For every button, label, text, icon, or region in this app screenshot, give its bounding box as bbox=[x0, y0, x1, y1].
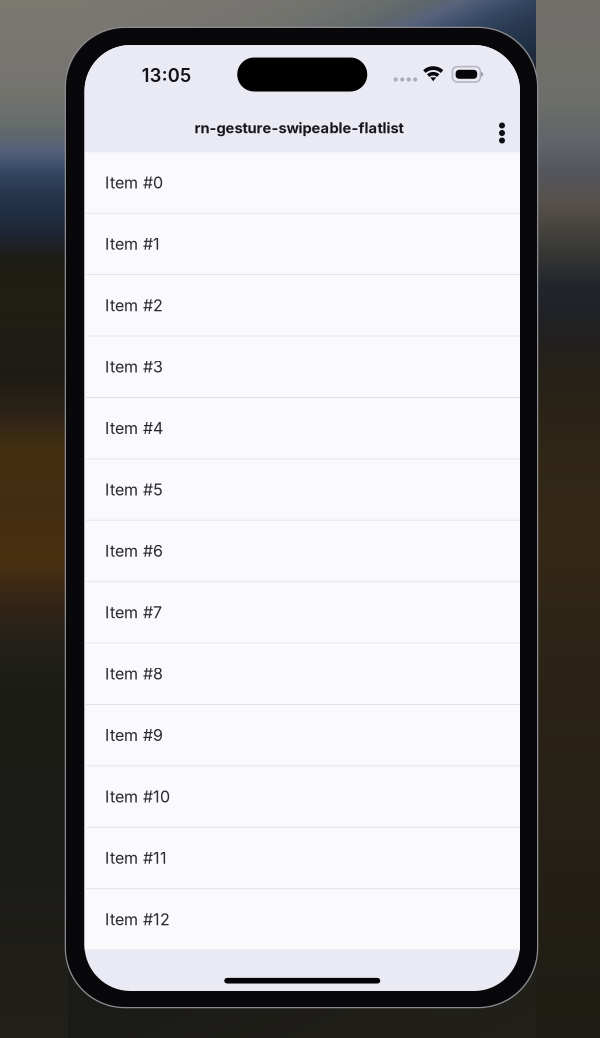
button[interactable]: Item #0 bbox=[84, 152, 520, 214]
button[interactable]: Item #4 bbox=[84, 398, 520, 459]
staticText: Item #0 bbox=[105, 173, 163, 192]
staticText: Item #3 bbox=[105, 357, 163, 376]
button[interactable]: Item #8 bbox=[84, 644, 520, 705]
button[interactable]: Item #9 bbox=[84, 705, 520, 766]
staticText: Item #12 bbox=[105, 910, 170, 929]
button[interactable]: Item #12 bbox=[84, 889, 520, 951]
staticText: Item #8 bbox=[105, 664, 163, 683]
button[interactable]: Item #2 bbox=[84, 275, 520, 337]
staticText: Item #6 bbox=[105, 541, 163, 561]
button[interactable]: Item #11 bbox=[84, 828, 520, 889]
button[interactable]: Item #3 bbox=[84, 337, 520, 398]
button[interactable]: Item #5 bbox=[84, 459, 520, 521]
button[interactable]: Item #1 bbox=[84, 214, 520, 275]
button[interactable]: Item #6 bbox=[84, 521, 520, 582]
button[interactable]: Item #10 bbox=[84, 766, 520, 828]
staticText: 13:05 bbox=[142, 64, 191, 86]
button[interactable]: Item #7 bbox=[84, 582, 520, 644]
staticText: Item #5 bbox=[105, 480, 163, 499]
staticText: Item #9 bbox=[105, 725, 163, 745]
staticText: Item #2 bbox=[105, 296, 163, 315]
staticText: Item #10 bbox=[105, 787, 170, 806]
staticText: Item #11 bbox=[105, 848, 167, 868]
staticText: Item #1 bbox=[105, 234, 160, 254]
staticText: Item #7 bbox=[105, 603, 162, 622]
staticText: Item #4 bbox=[105, 418, 163, 438]
staticText: rn-gesture-swipeable-flatlist bbox=[194, 119, 403, 137]
button[interactable]: More options bbox=[483, 110, 521, 156]
